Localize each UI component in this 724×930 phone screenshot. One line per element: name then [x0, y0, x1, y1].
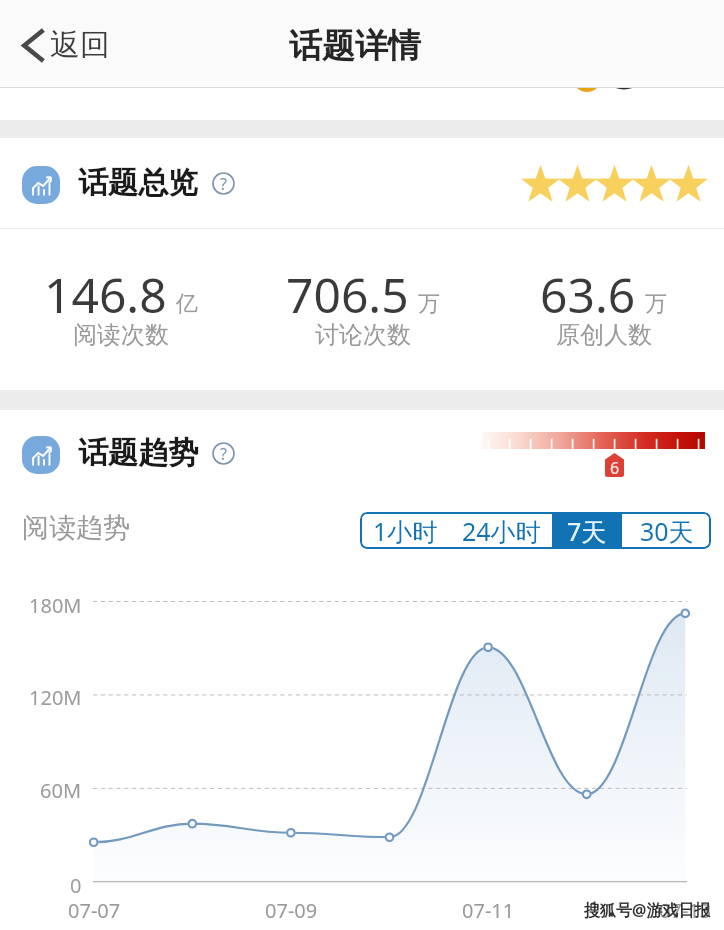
staticText: 07-07: [68, 897, 121, 923]
staticText: 24小时: [462, 514, 541, 548]
staticText: 706.5: [286, 262, 409, 327]
staticText: 阅读趋势: [22, 511, 130, 545]
staticText: 63.6: [540, 262, 636, 327]
staticText: ?: [220, 443, 227, 465]
button[interactable]: 帮助: [212, 442, 235, 465]
staticText: 30天: [640, 514, 694, 548]
staticText: 07-13: [659, 897, 712, 923]
staticText: 1小时: [373, 514, 438, 548]
button[interactable]: 7天: [552, 512, 622, 549]
staticText: 07-09: [265, 897, 318, 923]
staticText: ?: [220, 173, 227, 195]
staticText: 7天: [567, 514, 607, 548]
staticText: 原创人数: [556, 320, 652, 350]
button[interactable]: 帮助: [212, 172, 235, 195]
button[interactable]: 30天: [622, 512, 711, 549]
staticText: 6: [610, 457, 620, 479]
staticText: 话题趋势: [78, 434, 198, 472]
staticText: 120M: [29, 684, 82, 711]
staticText: 话题总览: [78, 164, 198, 202]
staticText: 讨论次数: [315, 320, 411, 350]
staticText: 07-11: [462, 897, 515, 923]
button[interactable]: 返回: [0, 17, 122, 71]
staticText: 0: [70, 872, 82, 899]
staticText: 万: [645, 290, 667, 318]
staticText: 返回: [50, 26, 110, 64]
staticText: 亿: [176, 290, 198, 318]
staticText: 搜狐号@游戏日报: [584, 899, 711, 921]
staticText: 60M: [40, 777, 82, 804]
staticText: 阅读次数: [73, 320, 169, 350]
staticText: 146.8: [44, 262, 167, 327]
staticText: 180M: [29, 592, 82, 619]
button[interactable]: 24小时: [450, 512, 552, 549]
button[interactable]: 1小时: [360, 512, 450, 549]
staticText: 话题详情: [289, 25, 421, 67]
staticText: 万: [418, 290, 440, 318]
